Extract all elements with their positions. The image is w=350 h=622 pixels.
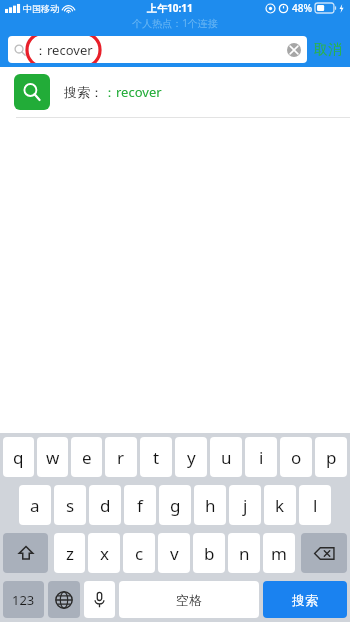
button[interactable]: 清除	[287, 43, 301, 57]
button[interactable]: c	[123, 533, 155, 573]
staticText: ：recover	[34, 41, 93, 59]
staticText: c	[135, 542, 144, 565]
button[interactable]: p	[315, 437, 347, 477]
staticText: 个人热点：1个连接	[0, 16, 350, 30]
staticText: 空格	[176, 592, 202, 608]
staticText: 上午10:11	[147, 1, 193, 15]
button[interactable]: i	[245, 437, 277, 477]
staticText: n	[239, 542, 250, 565]
staticText: i	[259, 446, 264, 469]
button[interactable]: o	[280, 437, 312, 477]
staticText: y	[187, 446, 196, 469]
staticText: u	[221, 446, 232, 469]
staticText: j	[243, 494, 248, 517]
staticText: 搜索：	[64, 84, 103, 100]
button[interactable]: t	[140, 437, 172, 477]
button[interactable]: m	[263, 533, 295, 573]
button[interactable]: Shift	[3, 533, 48, 573]
button[interactable]: s	[54, 485, 86, 525]
staticText: s	[66, 494, 75, 517]
button[interactable]: u	[210, 437, 242, 477]
staticText: r	[117, 446, 125, 469]
button[interactable]: k	[264, 485, 296, 525]
staticText: 123	[12, 591, 35, 609]
button[interactable]: j	[229, 485, 261, 525]
button[interactable]: q	[3, 437, 34, 477]
staticText: 48%	[292, 1, 312, 15]
button[interactable]: e	[71, 437, 102, 477]
staticText: 中国移动	[23, 3, 59, 14]
button[interactable]: b	[193, 533, 225, 573]
button[interactable]: ：recover	[8, 36, 307, 63]
button[interactable]: g	[159, 485, 191, 525]
button[interactable]: 语音输入	[84, 581, 115, 618]
staticText: e	[82, 446, 92, 469]
staticText: g	[170, 494, 181, 517]
button[interactable]: v	[158, 533, 190, 573]
button[interactable]: n	[228, 533, 260, 573]
staticText: d	[100, 494, 111, 517]
button[interactable]: 搜索：	[0, 67, 350, 117]
staticText: q	[13, 446, 24, 469]
staticText: f	[137, 494, 143, 517]
staticText: a	[30, 494, 40, 517]
staticText: 搜索	[292, 592, 318, 608]
staticText: ：recover	[103, 83, 162, 101]
button[interactable]: l	[299, 485, 331, 525]
staticText: k	[275, 494, 285, 517]
button[interactable]: 搜索	[263, 581, 347, 618]
button[interactable]: z	[54, 533, 85, 573]
staticText: w	[46, 446, 60, 469]
button[interactable]: 空格	[119, 581, 259, 618]
staticText: b	[204, 542, 215, 565]
staticText: z	[66, 542, 74, 565]
button[interactable]: y	[175, 437, 207, 477]
staticText: t	[153, 446, 160, 469]
button[interactable]: Backspace	[301, 533, 347, 573]
staticText: v	[170, 542, 179, 565]
button[interactable]: 取消	[314, 41, 342, 59]
staticText: l	[313, 494, 318, 517]
button[interactable]: x	[88, 533, 120, 573]
button[interactable]: r	[105, 437, 137, 477]
staticText: m	[271, 542, 287, 565]
staticText: o	[291, 446, 302, 469]
button[interactable]: a	[19, 485, 51, 525]
staticText: p	[326, 446, 337, 469]
button[interactable]: w	[37, 437, 68, 477]
staticText: 取消	[314, 41, 342, 59]
button[interactable]: 切换键盘	[48, 581, 80, 618]
staticText: x	[100, 542, 109, 565]
button[interactable]: f	[124, 485, 156, 525]
staticText: h	[205, 494, 216, 517]
button[interactable]: 123	[3, 581, 44, 618]
button[interactable]: h	[194, 485, 226, 525]
button[interactable]: d	[89, 485, 121, 525]
